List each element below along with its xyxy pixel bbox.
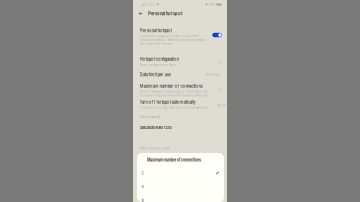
staticText: Other sharing mode bbox=[139, 146, 170, 150]
button[interactable]: Maximum number of connections bbox=[133, 77, 227, 97]
staticText: The personal hotspot will turn off autom… bbox=[139, 106, 208, 110]
button[interactable]: Data limit per use bbox=[133, 67, 227, 77]
staticText: 2 bbox=[141, 170, 143, 175]
staticText: Unlimited bbox=[205, 72, 220, 77]
staticText: Device password bbox=[139, 115, 160, 119]
staticText: Enable your personal hotspot to share th… bbox=[139, 34, 205, 45]
staticText: Personal hotspot bbox=[148, 10, 183, 16]
staticText: Hotspot configuration bbox=[139, 56, 178, 62]
button[interactable]: Back bbox=[138, 10, 144, 16]
button[interactable]: Turn off hotspot automatically bbox=[133, 97, 233, 110]
staticText: Maximum number of connections bbox=[139, 83, 202, 89]
staticText: 11:27 bbox=[146, 2, 155, 7]
staticText: Turn off hotspot automatically bbox=[139, 99, 195, 105]
staticText: CMLDSUONBO1233 bbox=[139, 125, 171, 130]
staticText: Allow 2 devices to access hotspot. The h… bbox=[139, 90, 208, 97]
staticText: Personal hotspot bbox=[139, 27, 171, 33]
staticText: Data limit per use bbox=[139, 72, 170, 77]
staticText: Never bbox=[217, 103, 226, 107]
staticText: 3 bbox=[141, 184, 143, 189]
button[interactable]: Hotspot configuration bbox=[133, 45, 227, 67]
staticText: Maximum number of connections bbox=[147, 157, 201, 163]
staticText: Name, password and more bbox=[139, 63, 175, 67]
staticText: 2 bbox=[218, 87, 220, 92]
staticText: 86% bbox=[209, 2, 215, 7]
button[interactable]: Personal hotspot bbox=[133, 18, 229, 45]
button[interactable]: 4 bbox=[137, 193, 224, 202]
button[interactable]: 2 bbox=[137, 166, 224, 180]
staticText: 4 bbox=[141, 198, 143, 202]
button[interactable]: 3 bbox=[137, 180, 224, 193]
